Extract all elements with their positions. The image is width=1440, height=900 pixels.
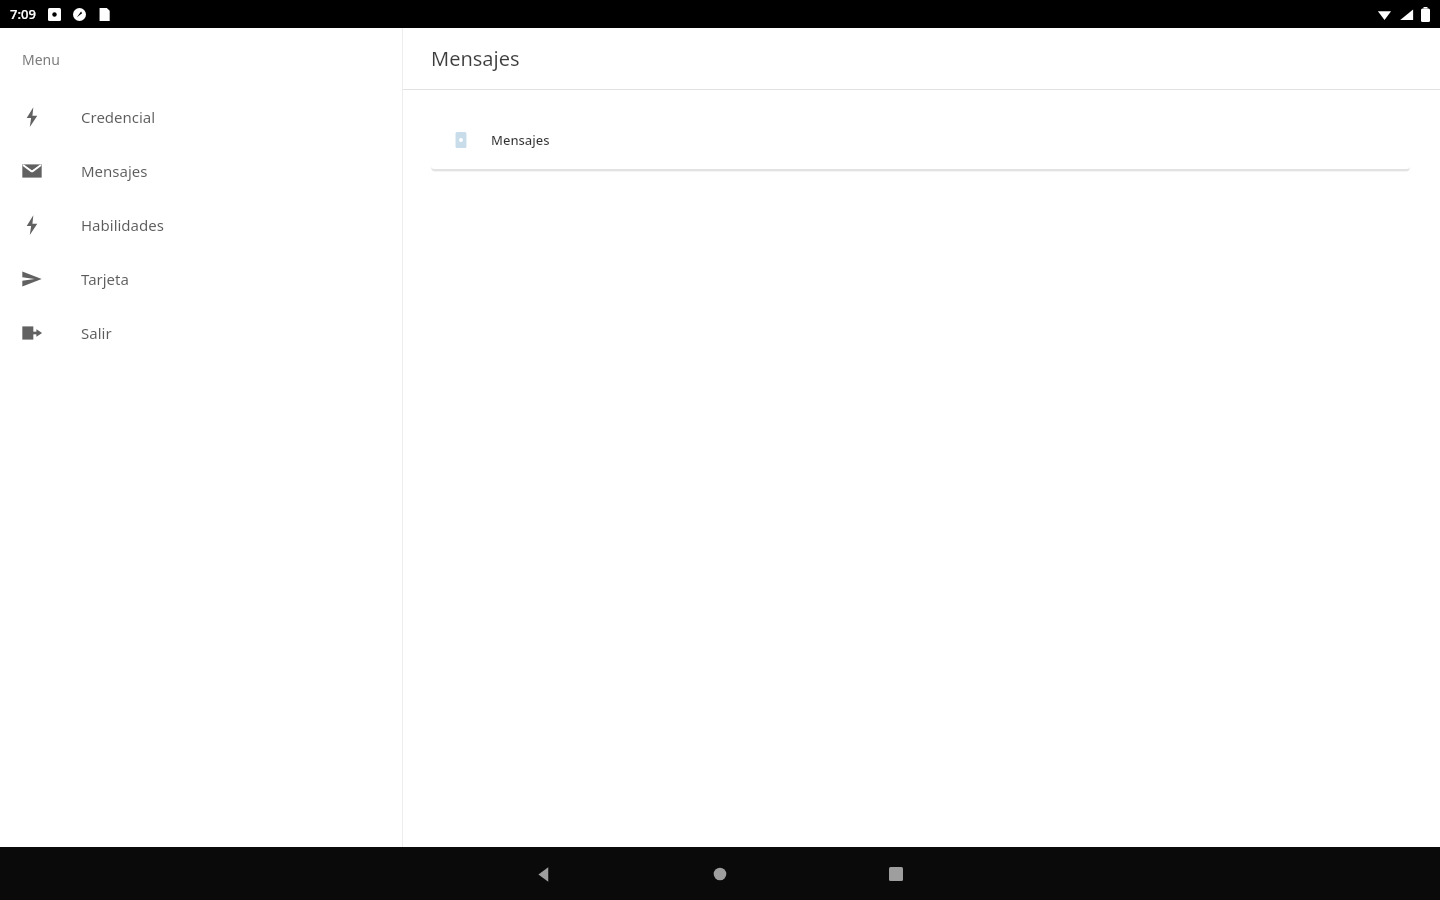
button[interactable]: Mensajes: [431, 110, 1410, 169]
staticText: Credencial: [81, 107, 156, 127]
button[interactable]: Mensajes: [0, 144, 403, 198]
staticText: Tarjeta: [81, 269, 129, 289]
button[interactable]: Credencial: [0, 90, 403, 144]
button[interactable]: Habilidades: [0, 198, 403, 252]
button[interactable]: Home: [696, 850, 744, 898]
button[interactable]: Recent apps: [872, 850, 920, 898]
staticText: Menu: [22, 50, 60, 69]
button[interactable]: Back: [520, 850, 568, 898]
button[interactable]: Tarjeta: [0, 252, 403, 306]
staticText: 7:09: [10, 5, 36, 23]
button[interactable]: Salir: [0, 306, 403, 360]
staticText: Mensajes: [81, 161, 148, 181]
staticText: Mensajes: [431, 45, 520, 72]
staticText: Salir: [81, 323, 112, 343]
staticText: Mensajes: [491, 131, 550, 149]
staticText: Habilidades: [81, 215, 164, 235]
